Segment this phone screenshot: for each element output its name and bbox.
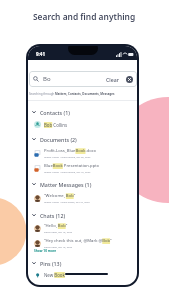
staticText: Searching through Matters, Contacts, Doc… bbox=[29, 92, 115, 96]
staticText: Chats (12) bbox=[40, 212, 66, 219]
staticText: 9:41 bbox=[36, 51, 45, 57]
staticText: Matter Name | Dana Fredo, Oct 18, 2023 bbox=[44, 200, 90, 203]
staticText: “Welcome, Bob” bbox=[44, 193, 76, 199]
staticText: Contacts (1) bbox=[40, 109, 70, 116]
staticText: Documents (2) bbox=[40, 136, 77, 143]
button[interactable]: “Hello, Bob” bbox=[34, 222, 73, 234]
staticText: Profit-Loss_BlueBook.docx bbox=[44, 148, 96, 154]
staticText: Bo bbox=[43, 75, 51, 83]
staticText: Matter Messages (1) bbox=[40, 181, 92, 188]
staticText: Bob Collins bbox=[44, 122, 67, 128]
button[interactable]: “Hey check this out, @Mark @Bob” bbox=[34, 237, 112, 249]
staticText: Clear bbox=[106, 76, 119, 83]
staticText: “Hello, Bob” bbox=[44, 223, 68, 229]
button[interactable]: Matter Messages (1) bbox=[31, 180, 92, 188]
staticText: New Book bbox=[44, 272, 65, 278]
staticText: Matter Name | Date Posted, Oct 28, 2023 bbox=[44, 155, 91, 158]
button[interactable]: Documents (2) bbox=[31, 135, 77, 143]
staticText: Dana Fredo, Oct 18, 2023 bbox=[44, 230, 73, 233]
staticText: Pins (13) bbox=[40, 260, 62, 267]
button[interactable]: Contacts (1) bbox=[31, 108, 70, 116]
button[interactable]: BlueBook Presentation.pptx bbox=[34, 162, 99, 174]
button[interactable]: New Book bbox=[34, 270, 65, 279]
button[interactable]: Bob Collins bbox=[34, 120, 67, 129]
button[interactable]: Bo bbox=[29, 71, 137, 87]
staticText: Matter Name | Date Posted, Oct 18, 2023 bbox=[44, 170, 91, 173]
button[interactable]: Show 10 more bbox=[34, 249, 57, 253]
button[interactable]: Chats (12) bbox=[31, 211, 66, 219]
staticText: Dana Fredo, Oct 18, 2023 bbox=[44, 245, 73, 248]
staticText: “Hey check this out, @Mark @Bob” bbox=[44, 238, 112, 244]
button[interactable]: Pins (13) bbox=[31, 259, 62, 267]
other: Clear search bbox=[126, 76, 133, 83]
button[interactable]: “Welcome, Bob” bbox=[34, 192, 90, 204]
button[interactable]: Profit-Loss_BlueBook.docx bbox=[34, 147, 96, 159]
staticText: Search and find anything bbox=[33, 11, 136, 22]
staticText: BlueBook Presentation.pptx bbox=[44, 163, 99, 169]
